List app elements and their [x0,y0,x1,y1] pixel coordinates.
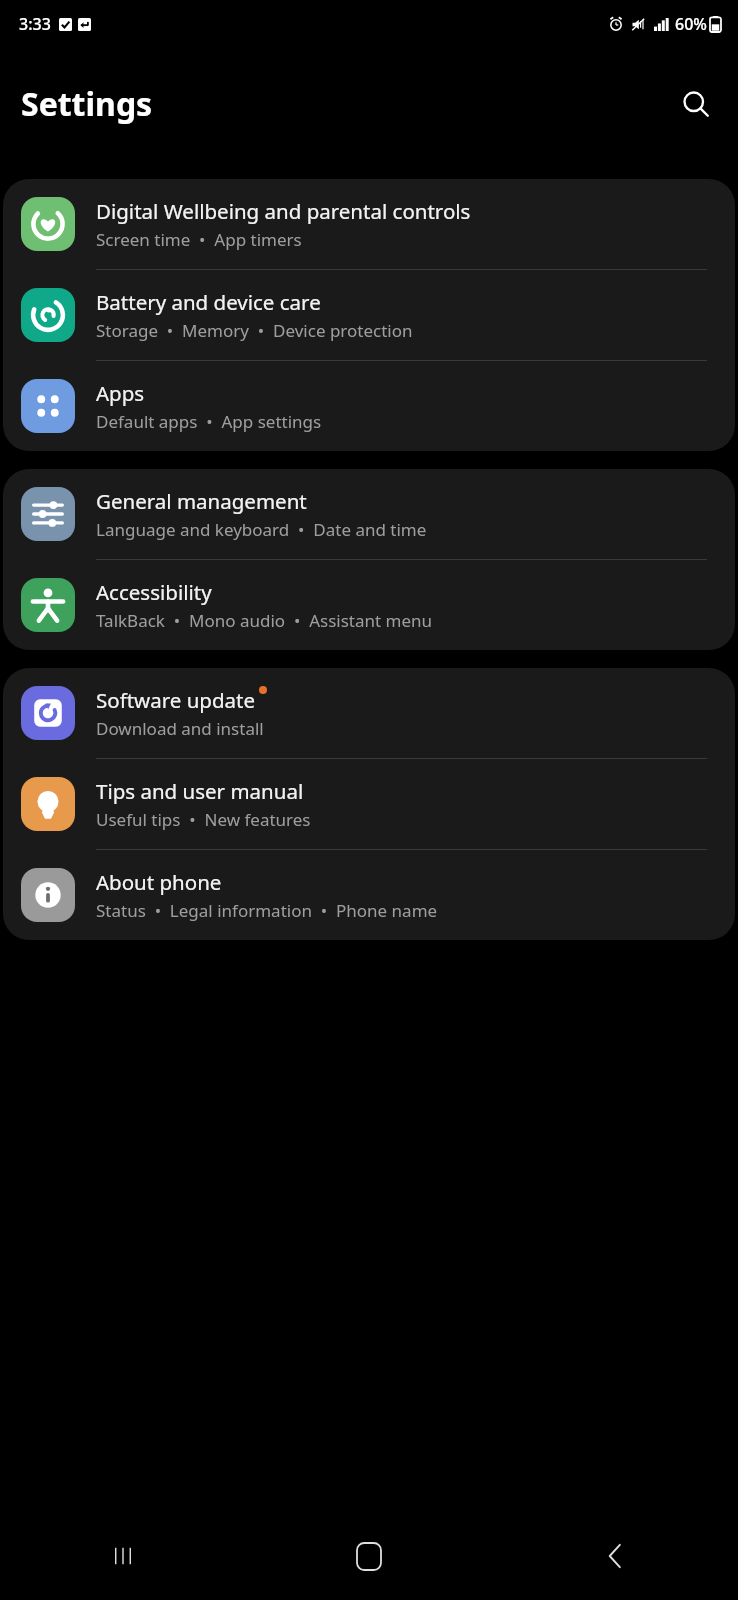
staticText: Settings [21,82,153,126]
button[interactable]: Search [670,78,722,130]
button[interactable]: Tips and user manual [3,759,735,849]
other: Digital Wellbeing and parental controls [21,197,75,251]
button[interactable]: Apps [3,361,735,451]
staticText: Apps [96,379,145,407]
staticText: Software update [96,686,256,714]
button[interactable]: Back [492,1512,738,1600]
staticText: 60% [675,13,707,35]
button[interactable]: About phone [3,850,735,940]
button[interactable]: Digital Wellbeing and parental controls [3,179,735,269]
other: Apps [21,379,75,433]
staticText: Download and install [96,717,264,740]
staticText: Useful tips • New features [96,808,311,831]
button[interactable]: Software update [3,668,735,758]
other: Software update [21,686,75,740]
button[interactable]: Battery and device care [3,270,735,360]
staticText: Screen time • App timers [96,228,302,251]
button[interactable]: Home [246,1512,492,1600]
staticText: Battery and device care [96,288,321,316]
other: General management [21,487,75,541]
button[interactable]: General management [3,469,735,559]
other: Battery and device care [21,288,75,342]
staticText: General management [96,487,307,515]
button[interactable]: Accessibility [3,560,735,650]
staticText: 3:33 [19,13,51,35]
other: Tips and user manual [21,777,75,831]
other: About phone [21,868,75,922]
staticText: About phone [96,868,222,896]
staticText: Language and keyboard • Date and time [96,518,427,541]
button[interactable]: Recent apps [0,1512,246,1600]
other: Accessibility [21,578,75,632]
staticText: Tips and user manual [96,777,304,805]
staticText: Default apps • App settings [96,410,322,433]
staticText: Digital Wellbeing and parental controls [96,197,471,225]
staticText: TalkBack • Mono audio • Assistant menu [96,609,433,632]
staticText: Accessibility [96,578,212,606]
staticText: Status • Legal information • Phone name [96,899,438,922]
staticText: Storage • Memory • Device protection [96,319,413,342]
